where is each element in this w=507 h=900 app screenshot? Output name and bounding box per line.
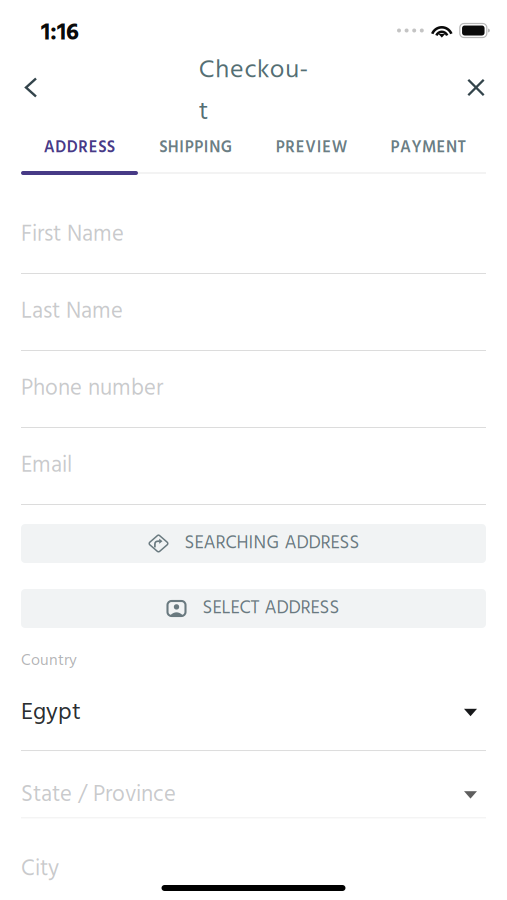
staticText: SELECT ADDRESS — [202, 594, 339, 623]
staticText: Phone number — [21, 371, 163, 407]
staticText: PREVIEW — [276, 135, 348, 161]
button[interactable]: Egypt — [21, 674, 486, 751]
staticText: Email — [21, 448, 72, 484]
button[interactable]: Back — [22, 61, 66, 114]
button[interactable]: PAYMENT — [370, 126, 486, 166]
staticText: PAYMENT — [390, 135, 465, 161]
button[interactable]: ADDRESS — [21, 126, 137, 166]
staticText: SHIPPING — [159, 135, 232, 161]
staticText: Checkout — [199, 50, 308, 133]
staticText: 1:16 — [41, 14, 79, 53]
button[interactable]: PREVIEW — [253, 126, 370, 166]
staticText: City — [21, 851, 59, 888]
button[interactable]: SEARCHING ADDRESS — [21, 524, 486, 563]
staticText: Egypt — [21, 694, 81, 732]
staticText: State / Province — [21, 777, 176, 813]
button[interactable]: Close — [441, 61, 485, 114]
staticText: SEARCHING ADDRESS — [184, 529, 359, 558]
staticText: Country — [21, 648, 77, 674]
staticText: ADDRESS — [44, 135, 115, 161]
staticText: Last Name — [21, 294, 123, 330]
button[interactable]: State / Province — [21, 751, 486, 818]
button[interactable]: SHIPPING — [137, 126, 253, 166]
button[interactable]: SELECT ADDRESS — [21, 589, 486, 628]
staticText: First Name — [21, 217, 124, 253]
